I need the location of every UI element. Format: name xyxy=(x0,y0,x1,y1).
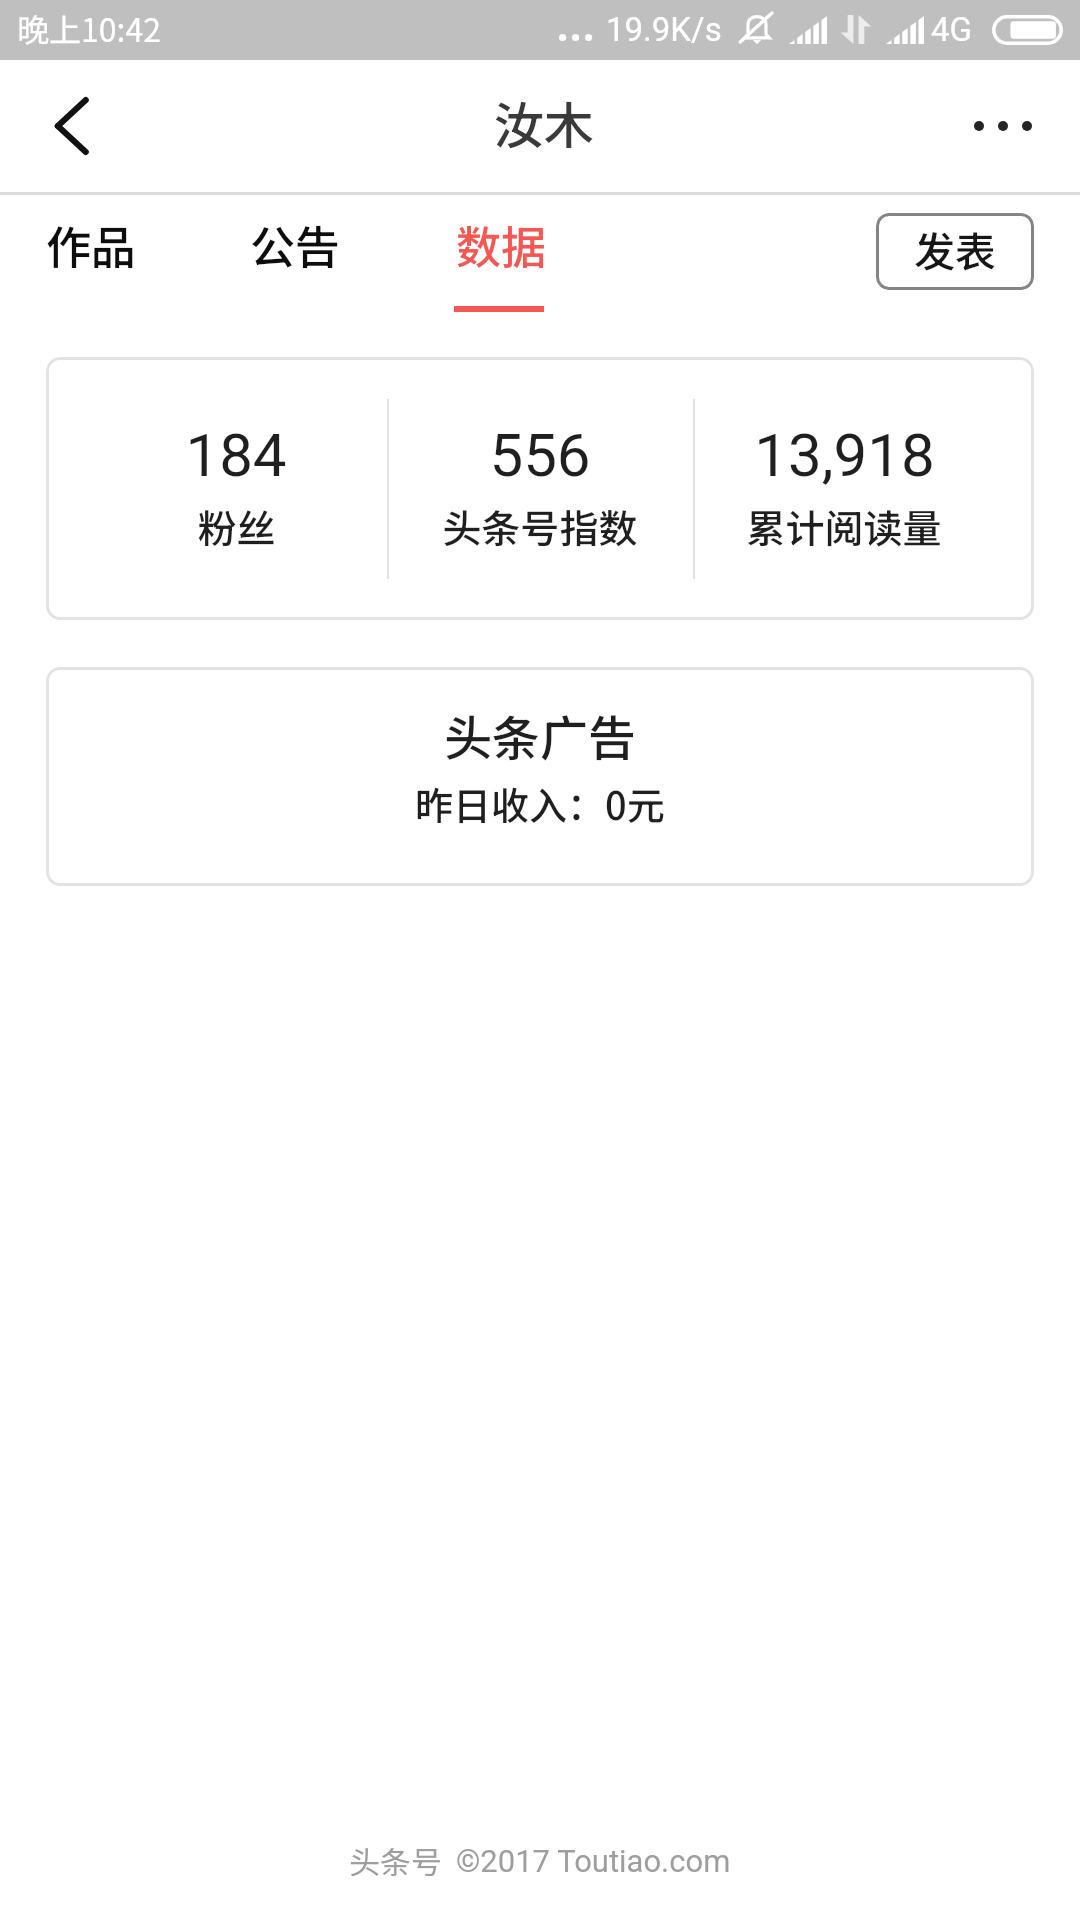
button[interactable]: 184 xyxy=(46,357,1034,620)
staticText: 19.9K/s xyxy=(606,10,722,49)
button[interactable]: 发表 xyxy=(876,213,1034,290)
button[interactable]: 头条广告 xyxy=(46,667,1034,886)
button[interactable]: 作品 xyxy=(22,192,156,322)
staticText: 晚上10:42 xyxy=(17,5,161,51)
staticText: 184 xyxy=(185,420,287,490)
button[interactable]: Back xyxy=(18,60,128,192)
staticText: 头条广告 xyxy=(444,700,637,770)
staticText: 头条号 xyxy=(349,1838,442,1883)
staticText: 4G xyxy=(931,10,973,49)
staticText: 数据 xyxy=(456,212,547,277)
staticText: ©2017 Toutiao.com xyxy=(456,1843,731,1879)
staticText: 发表 xyxy=(914,219,996,278)
staticText: 累计阅读量 xyxy=(746,498,942,554)
staticText: 556 xyxy=(489,420,591,490)
button[interactable]: 数据 xyxy=(432,192,566,322)
button[interactable]: 公告 xyxy=(226,192,360,322)
staticText: 头条号指数 xyxy=(442,498,638,554)
staticText: 作品 xyxy=(46,212,137,277)
staticText: 粉丝 xyxy=(197,498,276,554)
button[interactable]: More options xyxy=(948,60,1058,192)
staticText: 公告 xyxy=(250,212,341,277)
staticText: 汝木 xyxy=(494,86,594,158)
staticText: 昨日收入：0元 xyxy=(415,776,665,831)
staticText: 13,918 xyxy=(754,420,935,490)
